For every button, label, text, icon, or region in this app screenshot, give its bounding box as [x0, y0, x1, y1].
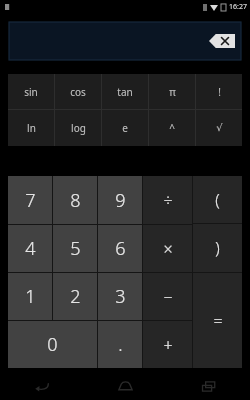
button[interactable]: tan [102, 74, 148, 109]
staticText: √ [216, 122, 223, 134]
staticText: ÷ [163, 189, 173, 211]
staticText: log [71, 121, 86, 135]
staticText: = [213, 310, 223, 332]
staticText: ! [218, 85, 221, 99]
button[interactable]: 8 [53, 176, 97, 224]
button[interactable]: ( [193, 176, 242, 223]
button[interactable]: ÷ [143, 176, 192, 224]
staticText: 4 [25, 236, 36, 261]
button[interactable]: 5 [53, 225, 97, 272]
button[interactable]: + [143, 321, 192, 368]
staticText: ) [215, 237, 220, 259]
button[interactable]: π [149, 74, 195, 109]
staticText: ( [215, 189, 220, 211]
staticText: . [118, 332, 123, 357]
button[interactable]: 3 [98, 273, 142, 320]
button[interactable]: e [102, 110, 148, 146]
staticText: 7 [25, 188, 36, 213]
staticText: 3 [115, 284, 126, 309]
button[interactable]: 1 [8, 273, 52, 320]
button[interactable]: √ [196, 110, 242, 146]
staticText: π [169, 85, 176, 99]
staticText: cos [70, 85, 86, 99]
staticText: 2 [70, 284, 81, 309]
button[interactable]: 6 [98, 225, 142, 272]
button[interactable]: Backspace [209, 34, 235, 48]
button[interactable]: = [193, 273, 242, 368]
button[interactable]: ^ [149, 110, 195, 146]
staticText: 16:27 [229, 2, 247, 12]
button[interactable]: log [55, 110, 101, 146]
staticText: + [163, 334, 173, 356]
button[interactable]: sin [8, 74, 54, 109]
button[interactable]: ! [196, 74, 242, 109]
button[interactable]: Recents [167, 372, 250, 400]
button[interactable]: ln [8, 110, 54, 146]
button[interactable]: 9 [98, 176, 142, 224]
button[interactable]: 0 [8, 321, 97, 368]
staticText: sin [24, 85, 38, 99]
button[interactable]: 2 [53, 273, 97, 320]
staticText: × [163, 238, 173, 260]
button[interactable]: cos [55, 74, 101, 109]
button[interactable]: 7 [8, 176, 52, 224]
button[interactable]: Home [84, 372, 167, 400]
staticText: ln [27, 121, 36, 135]
button[interactable]: . [98, 321, 142, 368]
staticText: e [122, 121, 128, 135]
staticText: 0 [47, 332, 58, 357]
staticText: ^ [169, 121, 175, 135]
button[interactable]: 4 [8, 225, 52, 272]
button[interactable]: ) [193, 224, 242, 272]
staticText: 8 [70, 188, 81, 213]
staticText: 9 [115, 188, 126, 213]
staticText: tan [117, 85, 133, 99]
button[interactable]: Back [0, 372, 84, 400]
button[interactable]: × [143, 225, 192, 272]
button[interactable]: − [143, 273, 192, 320]
staticText: 6 [115, 236, 126, 261]
staticText: 1 [25, 284, 36, 309]
staticText: 5 [70, 236, 81, 261]
staticText: − [163, 286, 173, 308]
